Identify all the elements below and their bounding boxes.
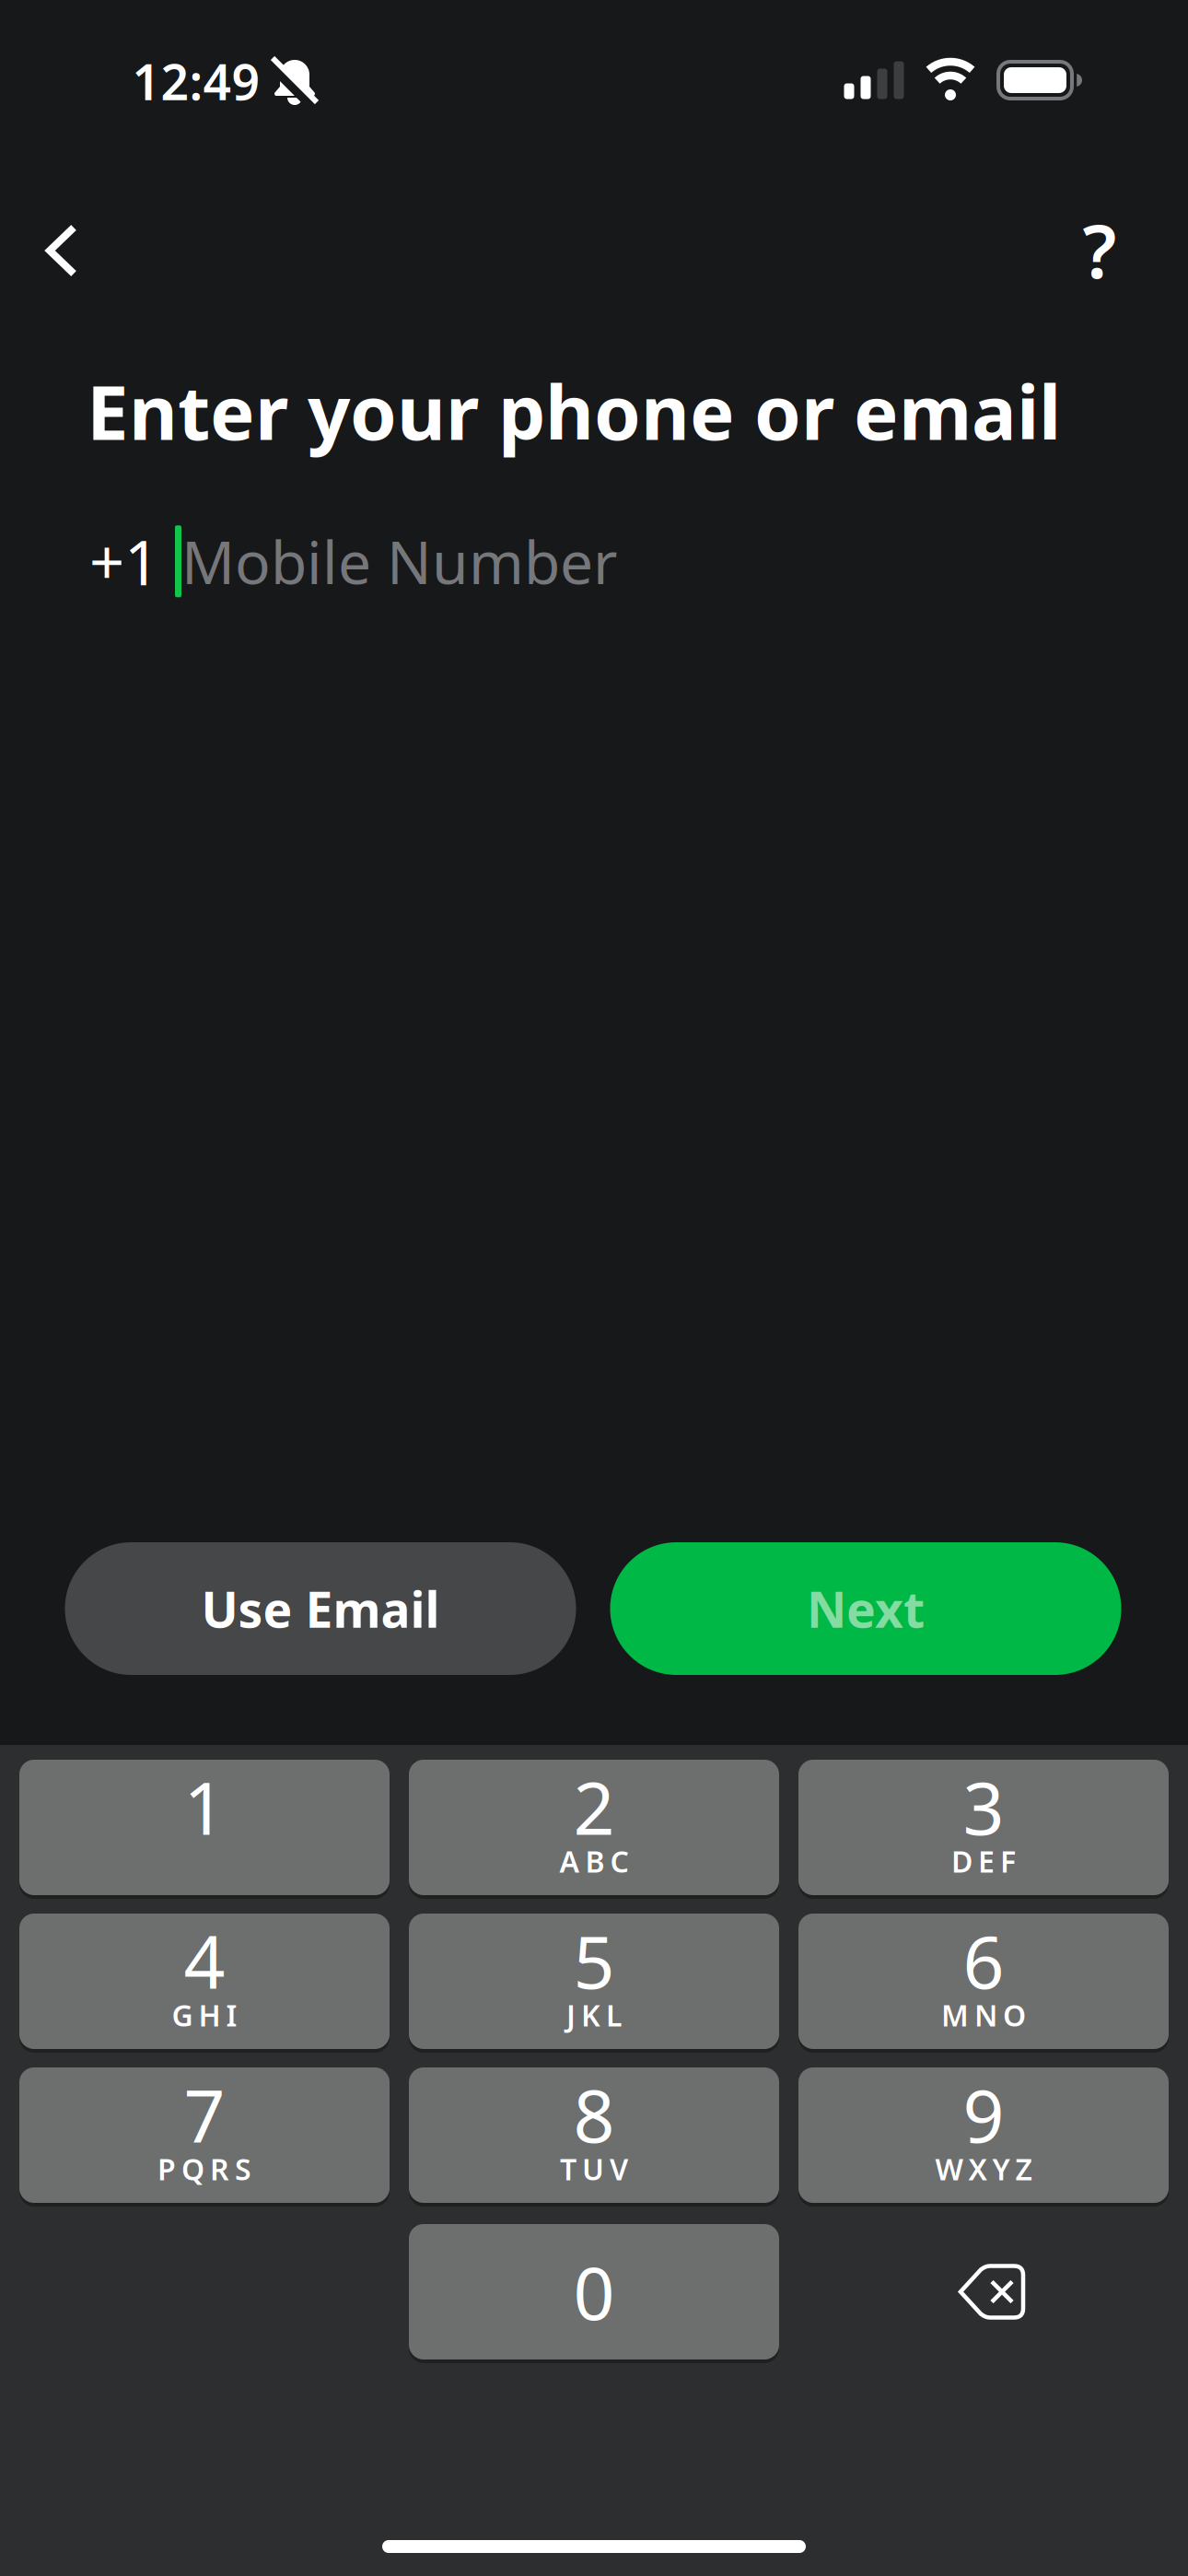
button[interactable]: Back	[45, 223, 78, 278]
staticText: Enter your phone or email	[87, 361, 1061, 461]
button[interactable]: 1	[19, 1760, 390, 1899]
staticText: Mobile Number	[181, 522, 617, 601]
staticText: Next	[807, 1576, 925, 1641]
staticText: Use Email	[201, 1576, 440, 1641]
button[interactable]: 5	[409, 1914, 779, 2053]
staticText: 6	[963, 1912, 1004, 2009]
button[interactable]: Help	[1083, 201, 1117, 299]
staticText: MNO	[941, 1995, 1026, 2035]
staticText: GHI	[172, 1995, 237, 2035]
button[interactable]: Next	[610, 1542, 1121, 1675]
staticText: 9	[963, 2066, 1004, 2163]
staticText: WXYZ	[935, 2149, 1032, 2188]
staticText: 2	[573, 1759, 615, 1855]
staticText: 4	[184, 1912, 225, 2009]
staticText: 3	[963, 1759, 1004, 1855]
staticText: ?	[1083, 201, 1117, 299]
button[interactable]: +1	[89, 521, 617, 602]
button[interactable]: 3	[798, 1760, 1169, 1899]
staticText: 8	[573, 2066, 615, 2163]
staticText: 5	[573, 1912, 615, 2009]
staticText: ABC	[559, 1842, 629, 1881]
button[interactable]: 8	[409, 2067, 779, 2207]
button[interactable]: 7	[19, 2067, 390, 2207]
button[interactable]: 6	[798, 1914, 1169, 2053]
staticText: JKL	[566, 1995, 622, 2035]
button[interactable]: 0	[409, 2222, 779, 2361]
button[interactable]: 4	[19, 1914, 390, 2053]
button[interactable]: Delete	[807, 2224, 1177, 2359]
button[interactable]: Use Email	[65, 1542, 576, 1675]
button[interactable]: 2	[409, 1760, 779, 1899]
staticText: TUV	[560, 2149, 628, 2188]
staticText: 7	[184, 2066, 225, 2163]
staticText: +1	[89, 521, 175, 602]
staticText: 0	[573, 2244, 615, 2340]
staticText: PQRS	[157, 2149, 251, 2188]
staticText: 12:49	[132, 48, 260, 114]
staticText: 1	[184, 1759, 225, 1855]
staticText: DEF	[951, 1842, 1016, 1881]
button[interactable]: 9	[798, 2067, 1169, 2207]
